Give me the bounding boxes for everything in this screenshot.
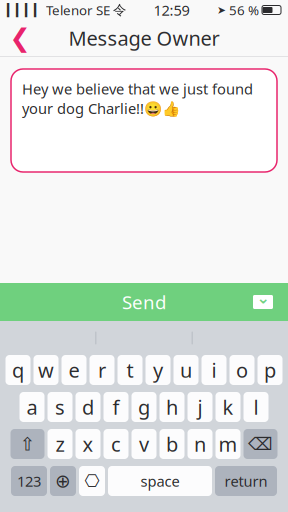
button[interactable]: x: [75, 429, 100, 459]
staticText: ⎔: [84, 471, 99, 491]
staticText: e: [68, 357, 79, 383]
button[interactable]: p: [257, 355, 282, 385]
button[interactable]: b: [159, 429, 184, 459]
staticText: 12:59: [153, 0, 189, 20]
staticText: 123: [17, 471, 41, 491]
staticText: space: [140, 471, 179, 491]
button[interactable]: y: [145, 355, 170, 385]
staticText: Telenor SE: [46, 1, 110, 19]
button[interactable]: h: [159, 392, 184, 422]
button[interactable]: t: [117, 355, 142, 385]
button[interactable]: o: [229, 355, 254, 385]
button[interactable]: Hey we believe that we just found your d…: [11, 69, 277, 172]
staticText: k: [222, 394, 233, 420]
staticText: d: [82, 394, 94, 420]
staticText: f: [112, 394, 119, 420]
button[interactable]: l: [243, 392, 268, 422]
button[interactable]: e: [61, 355, 86, 385]
button[interactable]: ⎔: [79, 466, 105, 496]
staticText: h: [166, 394, 178, 420]
button[interactable]: s: [47, 392, 72, 422]
staticText: w: [38, 357, 54, 383]
button[interactable]: c: [103, 429, 128, 459]
button[interactable]: k: [215, 392, 240, 422]
button[interactable]: n: [187, 429, 212, 459]
staticText: r: [98, 357, 106, 383]
staticText: c: [111, 431, 121, 457]
staticText: Message Owner: [68, 25, 219, 51]
staticText: q: [12, 357, 24, 383]
staticText: ⌄: [256, 289, 269, 307]
button[interactable]: Send: [0, 283, 288, 321]
button[interactable]: g: [131, 392, 156, 422]
staticText: ▎▎▎▎: [7, 3, 43, 17]
staticText: ⌫: [248, 434, 273, 454]
staticText: n: [194, 431, 206, 457]
staticText: g: [138, 394, 150, 420]
staticText: j: [197, 394, 202, 420]
staticText: s: [55, 394, 65, 420]
staticText: ⊕: [55, 470, 71, 492]
button[interactable]: ⇧: [10, 429, 44, 459]
staticText: ➤: [217, 4, 226, 16]
button[interactable]: i: [201, 355, 226, 385]
staticText: i: [211, 357, 216, 383]
staticText: b: [166, 431, 178, 457]
staticText: p: [264, 357, 276, 383]
staticText: return: [224, 471, 267, 491]
button[interactable]: w: [33, 355, 58, 385]
staticText: ⇧: [19, 433, 35, 455]
staticText: o: [236, 357, 248, 383]
button[interactable]: m: [215, 429, 240, 459]
staticText: m: [218, 431, 237, 457]
button[interactable]: z: [47, 429, 72, 459]
staticText: v: [139, 431, 149, 457]
button[interactable]: r: [89, 355, 114, 385]
button[interactable]: return: [215, 466, 277, 496]
button[interactable]: u: [173, 355, 198, 385]
button[interactable]: Back: [0, 20, 40, 56]
staticText: x: [82, 431, 93, 457]
staticText: z: [55, 431, 64, 457]
staticText: u: [180, 357, 192, 383]
staticText: Send: [122, 290, 166, 314]
button[interactable]: q: [5, 355, 30, 385]
button[interactable]: ⌫: [243, 429, 277, 459]
button[interactable]: d: [75, 392, 100, 422]
button[interactable]: 123: [11, 466, 47, 496]
staticText: t: [126, 357, 133, 383]
staticText: 令: [113, 2, 126, 18]
button[interactable]: a: [19, 392, 44, 422]
staticText: y: [153, 357, 163, 383]
staticText: ❮: [9, 24, 30, 52]
button[interactable]: f: [103, 392, 128, 422]
button[interactable]: space: [108, 466, 212, 496]
button[interactable]: ⊕: [50, 466, 76, 496]
staticText: l: [253, 394, 258, 420]
staticText: a: [26, 394, 37, 420]
staticText: 56 %: [229, 1, 259, 19]
button[interactable]: j: [187, 392, 212, 422]
button[interactable]: v: [131, 429, 156, 459]
staticText: Hey we believe that we just found your d…: [22, 79, 253, 118]
